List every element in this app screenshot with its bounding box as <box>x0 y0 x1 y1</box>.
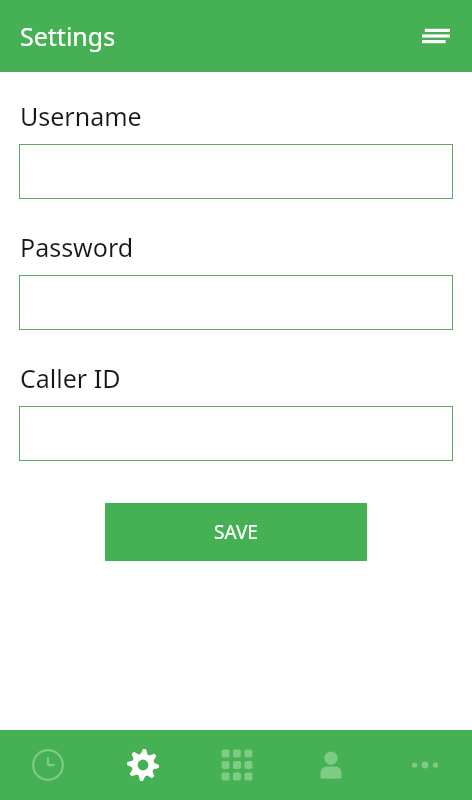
staticText: Settings <box>20 19 116 53</box>
button[interactable]: Recent <box>0 730 95 800</box>
button[interactable]: Sort <box>412 12 460 60</box>
staticText: Caller ID <box>20 361 121 395</box>
button[interactable] <box>19 144 453 199</box>
button[interactable]: Settings <box>95 730 190 800</box>
button[interactable] <box>19 275 453 330</box>
button[interactable]: Dialpad <box>190 730 284 800</box>
staticText: SAVE <box>214 519 258 545</box>
button[interactable]: More <box>378 730 472 800</box>
staticText: Username <box>20 99 142 133</box>
staticText: Password <box>20 230 134 264</box>
button[interactable] <box>19 406 453 461</box>
button[interactable]: Contacts <box>284 730 378 800</box>
button[interactable]: SAVE <box>105 503 367 561</box>
